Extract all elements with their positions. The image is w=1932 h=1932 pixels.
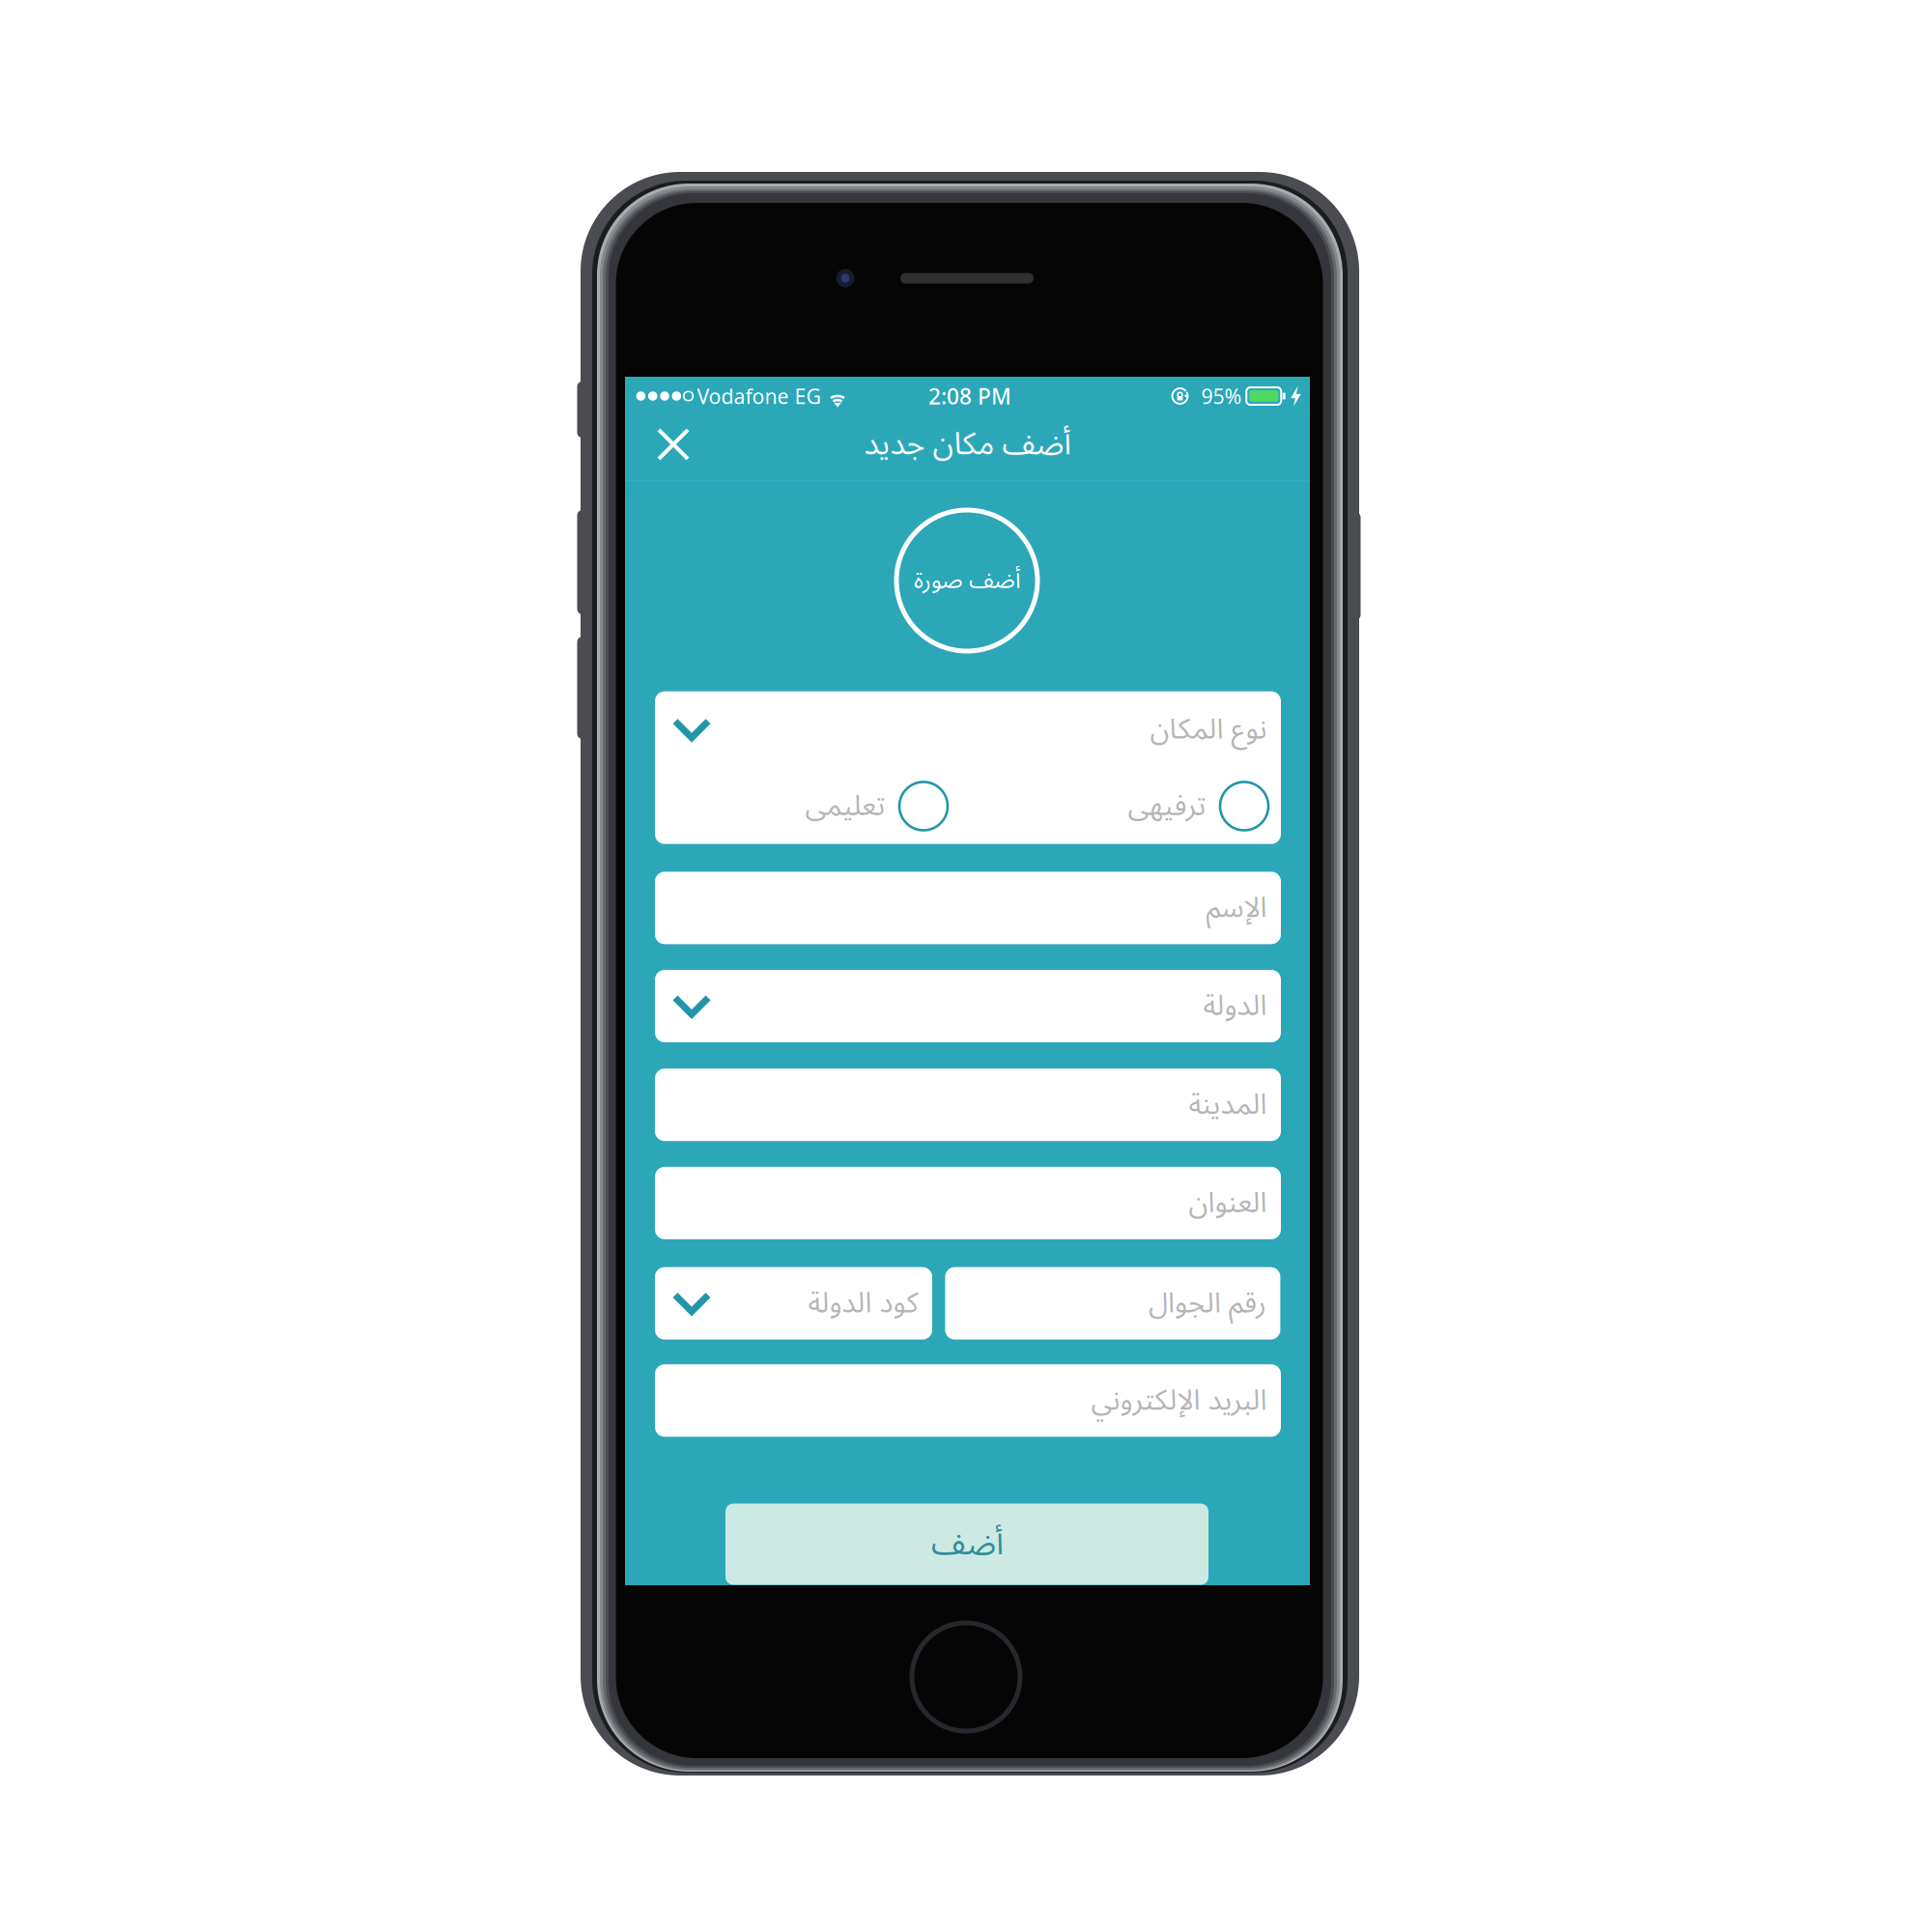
staticText: ترفيهى xyxy=(1127,776,1206,836)
staticText: 95% xyxy=(1201,382,1242,410)
staticText: 2:08 PM xyxy=(928,381,1011,411)
button[interactable]: الإسم xyxy=(655,872,1281,944)
button[interactable]: رقم الجوال xyxy=(945,1267,1280,1340)
staticText: البريد الإلكتروني xyxy=(1091,1371,1266,1430)
staticText: نوع المكان xyxy=(1150,700,1266,759)
button[interactable]: المدينة xyxy=(655,1069,1281,1141)
button[interactable]: نوع المكان xyxy=(655,691,1281,844)
staticText: كود الدولة xyxy=(808,1273,918,1333)
staticText: الدولة xyxy=(1203,976,1266,1036)
button[interactable]: أضف صورة xyxy=(895,508,1039,653)
staticText: أضف مكان جديد xyxy=(864,412,1071,477)
button[interactable]: Close xyxy=(642,413,704,475)
staticText: الإسم xyxy=(1206,878,1266,938)
staticText: أضف صورة xyxy=(913,556,1021,605)
staticText: تعليمى xyxy=(805,776,885,836)
button[interactable]: تعليمى xyxy=(805,777,948,835)
button[interactable]: الدولة xyxy=(655,970,1281,1042)
button[interactable]: البريد الإلكتروني xyxy=(655,1364,1281,1437)
button[interactable]: العنوان xyxy=(655,1167,1281,1239)
button[interactable]: كود الدولة xyxy=(655,1267,932,1340)
staticText: Vodafone EG xyxy=(697,382,822,410)
staticText: المدينة xyxy=(1188,1075,1266,1135)
button[interactable]: أضف xyxy=(725,1504,1208,1585)
staticText: رقم الجوال xyxy=(1148,1273,1266,1333)
staticText: العنوان xyxy=(1188,1173,1266,1233)
button[interactable]: ترفيهى xyxy=(1127,777,1268,835)
staticText: أضف xyxy=(931,1510,1003,1578)
